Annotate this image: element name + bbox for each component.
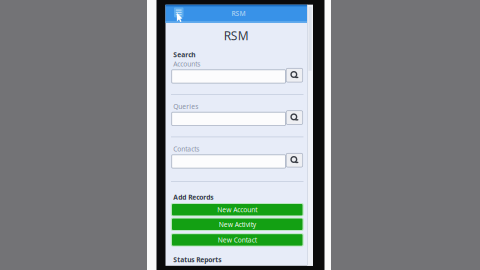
staticText: Add Records bbox=[173, 193, 213, 201]
button[interactable]: New Contact bbox=[172, 234, 302, 246]
staticText: RSM bbox=[224, 27, 249, 43]
button[interactable]: Search Queries bbox=[286, 111, 303, 124]
button[interactable]: New Activity bbox=[172, 219, 302, 230]
staticText: Search bbox=[173, 50, 195, 59]
staticText: New Activity bbox=[219, 220, 256, 229]
button[interactable]: Search Accounts bbox=[286, 68, 303, 82]
staticText: New Account bbox=[217, 205, 257, 214]
button[interactable]: Search Contacts bbox=[286, 153, 303, 167]
button[interactable]: New Account bbox=[172, 204, 302, 215]
staticText: Status Reports bbox=[173, 255, 221, 264]
staticText: New Contact bbox=[218, 235, 257, 244]
staticText: RSM bbox=[231, 9, 245, 18]
staticText: Queries bbox=[173, 102, 198, 111]
button[interactable]: Menu bbox=[174, 7, 183, 17]
staticText: Accounts bbox=[173, 60, 200, 68]
staticText: Contacts bbox=[173, 145, 199, 153]
